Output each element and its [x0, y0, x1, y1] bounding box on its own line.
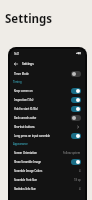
staticText: ▴●▮: [76, 52, 81, 55]
staticText: Hold to start (0.55s): [14, 107, 69, 111]
button[interactable]: Toggle: [71, 88, 81, 94]
button[interactable]: Show Scramble Image: [10, 157, 85, 166]
staticText: Scramble Font Size: [14, 178, 74, 182]
staticText: Timer Mode: [14, 72, 69, 76]
staticText: Settings: [22, 62, 34, 66]
staticText: Screen Orientation: [14, 151, 63, 155]
staticText: Scramble Image Colors: [14, 169, 79, 173]
button[interactable]: Back cancels solve: [10, 113, 85, 122]
button[interactable]: Toggle: [71, 106, 81, 112]
button[interactable]: Scramble Font Size: [10, 175, 85, 184]
staticText: Shortcut buttons: [14, 125, 75, 129]
staticText: 4: [79, 169, 81, 173]
button[interactable]: Statistics Info Size: [10, 184, 85, 193]
button[interactable]: Screen Orientation: [10, 148, 85, 157]
staticText: 4: [79, 187, 81, 191]
button[interactable]: Inspection (15s): [10, 95, 85, 104]
button[interactable]: Hold to start (0.55s): [10, 104, 85, 113]
button[interactable]: Timer Mode: [10, 69, 85, 78]
staticText: 18 sp: [74, 178, 81, 182]
staticText: Keep screen on: [14, 89, 69, 93]
button[interactable]: Toggle: [71, 115, 81, 121]
staticText: Back cancels solve: [14, 116, 69, 120]
button[interactable]: Toggle: [71, 71, 81, 77]
button[interactable]: Scramble Image Colors: [10, 166, 85, 175]
staticText: Statistics Info Size: [14, 187, 79, 191]
button[interactable]: Shortcut buttons: [10, 122, 85, 131]
button[interactable]: Long press on input scramble: [10, 131, 85, 140]
staticText: Inspection (15s): [14, 98, 69, 102]
staticText: 9:41: [14, 52, 20, 56]
staticText: Timing: [13, 80, 22, 84]
button[interactable]: Toggle: [71, 133, 81, 139]
staticText: Show Scramble Image: [14, 160, 69, 164]
staticText: Long press on input scramble: [14, 134, 69, 138]
staticText: Settings: [5, 11, 53, 27]
staticText: Follow system: [63, 151, 81, 155]
button[interactable]: Keep screen on: [10, 86, 85, 95]
button[interactable]: Toggle: [71, 159, 81, 165]
button[interactable]: Back: [13, 61, 19, 67]
button[interactable]: Toggle: [71, 97, 81, 103]
staticText: Appearance: [13, 142, 28, 146]
